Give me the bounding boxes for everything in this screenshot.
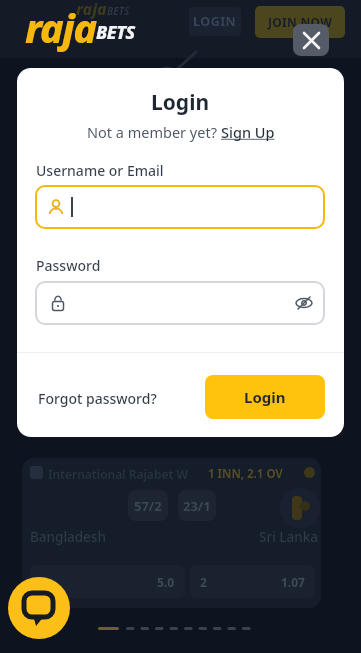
staticText: Not a member yet? <box>87 122 221 142</box>
staticText: Login <box>244 387 286 407</box>
staticText: 2 <box>200 574 207 590</box>
button[interactable]: 2 <box>190 565 315 598</box>
staticText: 1 INN, 2.1 OV <box>208 466 283 482</box>
staticText: Bangladesh <box>30 528 106 546</box>
staticText: BETS <box>107 4 130 18</box>
button[interactable]: LOGIN <box>189 7 241 36</box>
staticText: BETS <box>96 20 135 45</box>
button[interactable]: Login <box>205 375 325 419</box>
button[interactable] <box>293 24 329 56</box>
staticText: raja <box>76 0 107 20</box>
button[interactable] <box>8 577 70 639</box>
staticText: Sri Lanka <box>259 528 318 546</box>
staticText: International Rajabet W <box>48 466 188 482</box>
staticText: Password <box>36 256 101 275</box>
button[interactable]: JOIN NOW <box>255 6 345 38</box>
staticText: Login <box>151 88 210 117</box>
staticText: 1 <box>40 574 47 590</box>
staticText: 23/1 <box>183 497 211 515</box>
button[interactable] <box>35 185 325 229</box>
staticText: JOIN NOW <box>268 14 333 30</box>
staticText: raja <box>25 0 96 54</box>
staticText: Username or Email <box>36 161 164 180</box>
button[interactable]: Sign Up <box>221 122 275 142</box>
staticText: 5.0 <box>157 574 175 590</box>
button[interactable]: 1 <box>30 565 185 598</box>
button[interactable] <box>35 281 325 325</box>
staticText: 1.07 <box>281 574 305 590</box>
button[interactable]: Forgot password? <box>38 389 157 408</box>
staticText: 57/2 <box>134 497 162 515</box>
staticText: LOGIN <box>193 13 237 30</box>
